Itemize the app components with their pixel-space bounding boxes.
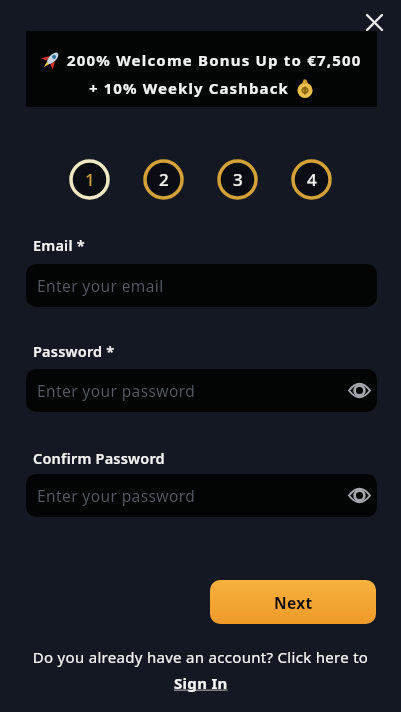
staticText: 3	[233, 168, 243, 191]
button[interactable]: Sign In	[174, 673, 228, 693]
button[interactable]: 1	[69, 159, 110, 200]
staticText: Enter your email	[37, 275, 164, 296]
button[interactable]: 2	[143, 159, 184, 200]
staticText: 1	[85, 168, 95, 191]
staticText: Password *	[33, 341, 115, 361]
button[interactable]	[356, 4, 392, 40]
staticText: Confirm Password	[33, 448, 165, 468]
staticText: 2	[159, 168, 169, 191]
staticText: Email *	[33, 235, 85, 255]
staticText: 200% Welcome Bonus Up to €7,500	[67, 50, 362, 70]
staticText: Enter your password	[37, 485, 196, 506]
staticText: Next	[274, 592, 313, 613]
staticText: 4	[307, 168, 317, 191]
button[interactable]: Enter your password	[26, 474, 377, 517]
staticText: Do you already have an account? Click he…	[0, 647, 401, 667]
staticText: + 10% Weekly Cashback	[89, 78, 289, 98]
button[interactable]: 4	[291, 159, 332, 200]
button[interactable]: 3	[217, 159, 258, 200]
button[interactable]: Enter your password	[26, 369, 377, 412]
button[interactable]: Next	[210, 580, 376, 624]
staticText: Enter your password	[37, 380, 196, 401]
button[interactable]: Enter your email	[26, 264, 377, 307]
